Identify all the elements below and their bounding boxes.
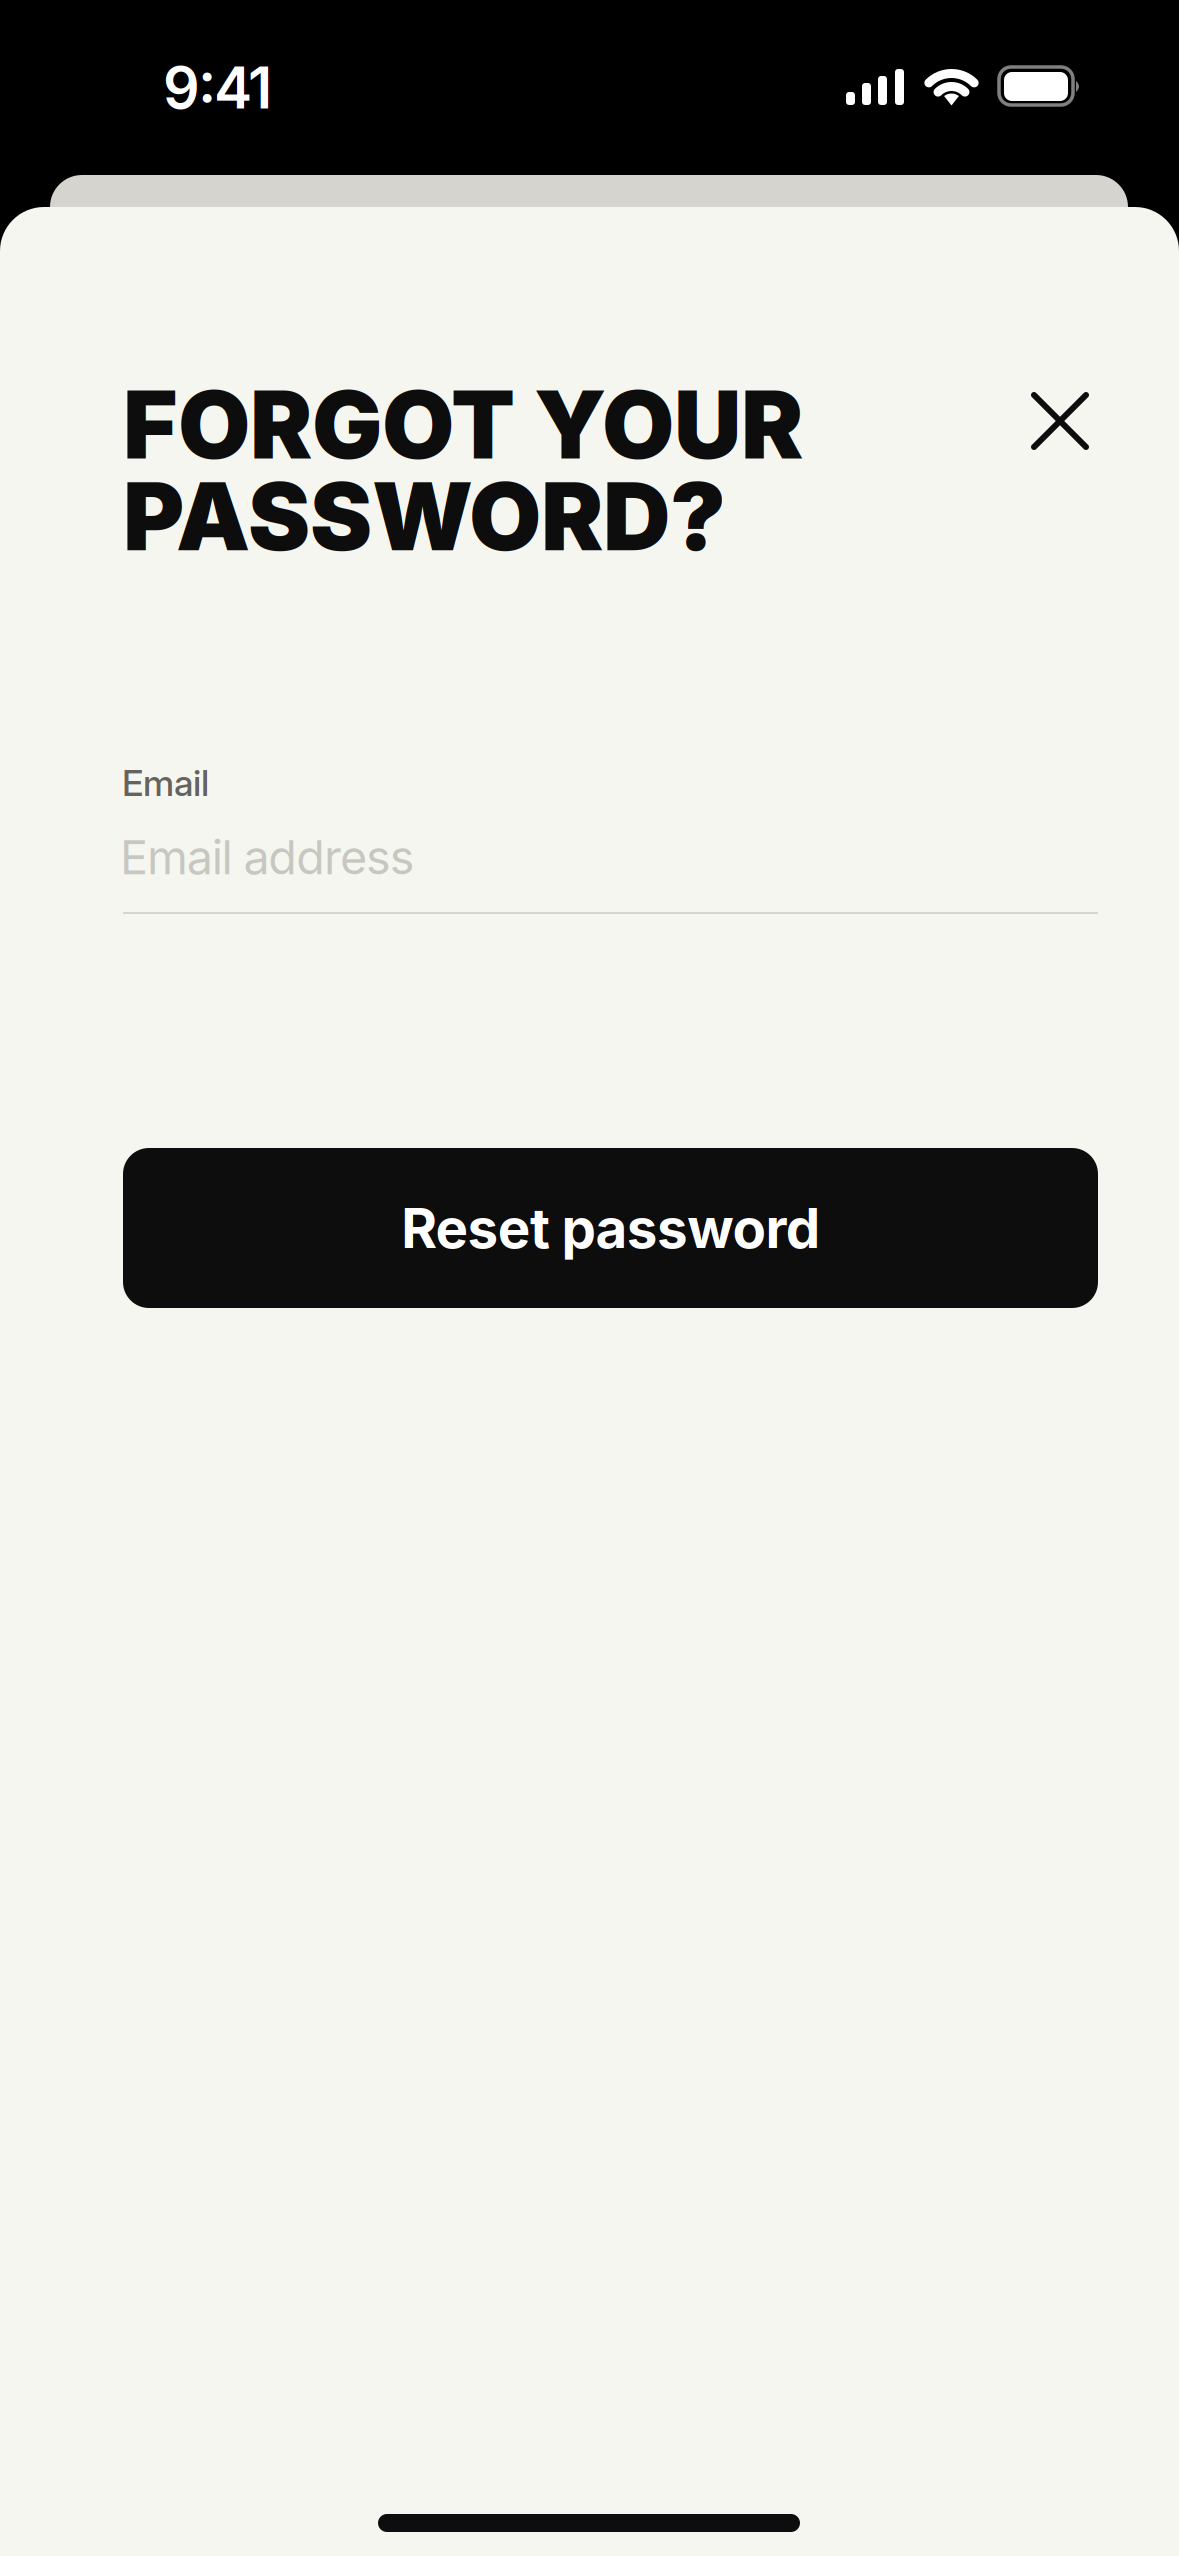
staticText: Email address xyxy=(120,829,415,885)
staticText: PASSWORD? xyxy=(123,460,726,573)
staticText: Reset password xyxy=(401,1195,820,1261)
button[interactable]: Email address xyxy=(123,824,1098,929)
staticText: Email xyxy=(122,761,209,805)
button[interactable]: Reset password xyxy=(123,1148,1098,1308)
button[interactable]: Close xyxy=(1010,371,1110,471)
staticText: FORGOT YOUR xyxy=(123,368,803,481)
staticText: 9:41 xyxy=(163,53,272,122)
